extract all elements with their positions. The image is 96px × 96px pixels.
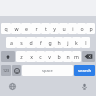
button[interactable]: Shift bbox=[1, 51, 15, 62]
staticText: u bbox=[62, 25, 66, 32]
staticText: c bbox=[39, 53, 42, 60]
staticText: b bbox=[57, 53, 61, 60]
button[interactable]: x bbox=[26, 51, 36, 62]
staticText: d bbox=[29, 39, 33, 46]
staticText: t bbox=[45, 25, 47, 32]
staticText: m bbox=[74, 53, 79, 60]
button[interactable]: z bbox=[16, 51, 26, 62]
button[interactable]: y bbox=[50, 23, 59, 34]
button[interactable]: search bbox=[74, 65, 95, 76]
staticText: a bbox=[10, 39, 13, 46]
button[interactable]: Voice input bbox=[78, 80, 90, 92]
button[interactable]: Backspace bbox=[82, 51, 95, 62]
staticText: h bbox=[57, 39, 61, 46]
staticText: k bbox=[75, 39, 78, 46]
staticText: space bbox=[42, 68, 53, 73]
staticText: l bbox=[85, 39, 87, 46]
button[interactable]: v bbox=[45, 51, 54, 62]
button[interactable]: q bbox=[1, 23, 11, 34]
button[interactable]: 123 bbox=[1, 65, 11, 76]
button[interactable]: o bbox=[77, 23, 86, 34]
staticText: z bbox=[20, 53, 23, 60]
button[interactable]: t bbox=[41, 23, 50, 34]
button[interactable]: i bbox=[68, 23, 77, 34]
staticText: o bbox=[80, 25, 84, 32]
staticText: g bbox=[48, 39, 52, 46]
button[interactable]: Emoji bbox=[12, 65, 21, 76]
staticText: q bbox=[4, 25, 8, 32]
staticText: 123 bbox=[3, 68, 10, 73]
staticText: e bbox=[25, 25, 28, 32]
staticText: f bbox=[40, 39, 42, 46]
staticText: x bbox=[30, 53, 33, 60]
button[interactable]: u bbox=[59, 23, 68, 34]
button[interactable]: space bbox=[22, 65, 73, 76]
staticText: s bbox=[20, 39, 23, 46]
button[interactable]: w bbox=[11, 23, 21, 34]
button[interactable]: l bbox=[81, 37, 90, 48]
button[interactable]: s bbox=[16, 37, 26, 48]
button[interactable]: c bbox=[36, 51, 45, 62]
staticText: r bbox=[35, 25, 38, 32]
button[interactable]: k bbox=[72, 37, 81, 48]
button[interactable]: r bbox=[31, 23, 41, 34]
staticText: search bbox=[78, 68, 92, 74]
button[interactable]: p bbox=[86, 23, 95, 34]
staticText: j bbox=[67, 39, 69, 46]
button[interactable]: j bbox=[63, 37, 72, 48]
staticText: p bbox=[89, 25, 93, 32]
staticText: w bbox=[14, 25, 19, 32]
button[interactable]: h bbox=[54, 37, 63, 48]
button[interactable]: Change keyboard language bbox=[6, 80, 18, 92]
button[interactable]: b bbox=[54, 51, 63, 62]
button[interactable]: g bbox=[45, 37, 54, 48]
button[interactable]: e bbox=[21, 23, 31, 34]
button[interactable]: f bbox=[36, 37, 45, 48]
staticText: n bbox=[66, 53, 70, 60]
button[interactable]: n bbox=[63, 51, 72, 62]
button[interactable]: m bbox=[72, 51, 81, 62]
button[interactable]: d bbox=[26, 37, 36, 48]
staticText: v bbox=[48, 53, 51, 60]
staticText: y bbox=[53, 25, 56, 32]
staticText: i bbox=[72, 25, 74, 32]
button[interactable]: a bbox=[6, 37, 16, 48]
